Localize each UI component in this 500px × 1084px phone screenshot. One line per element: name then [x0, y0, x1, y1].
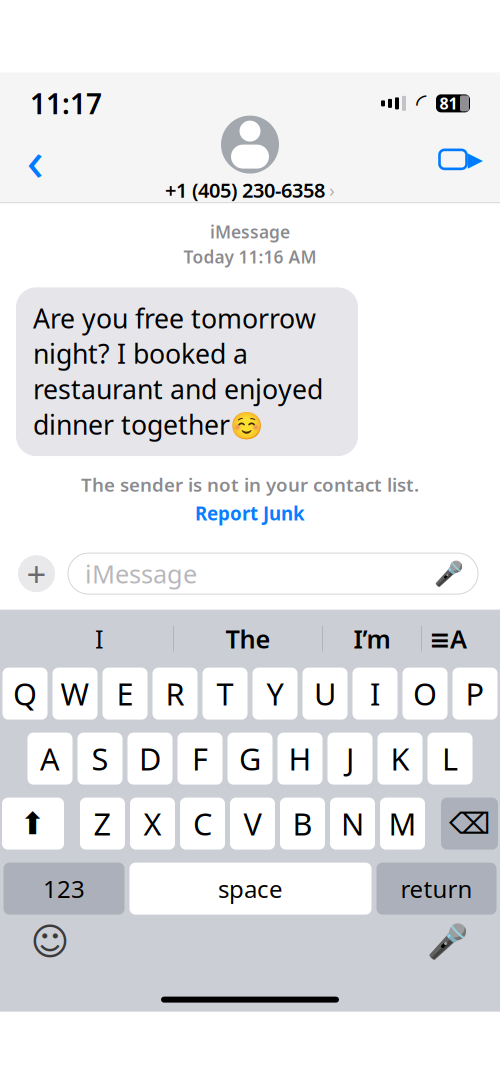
- button[interactable]: I: [352, 668, 397, 720]
- staticText: A: [40, 738, 60, 779]
- button[interactable]: iMessage: [68, 553, 478, 594]
- button[interactable]: Delete: [441, 798, 498, 850]
- staticText: Q: [13, 673, 37, 714]
- button[interactable]: M: [380, 798, 425, 850]
- staticText: ›: [329, 177, 335, 202]
- button[interactable]: Z: [80, 798, 125, 850]
- button[interactable]: W: [52, 668, 97, 720]
- button[interactable]: A: [27, 733, 72, 785]
- button[interactable]: E: [102, 668, 147, 720]
- button[interactable]: T: [202, 668, 247, 720]
- staticText: L: [442, 738, 458, 779]
- button[interactable]: P: [452, 668, 497, 720]
- staticText: 🎤: [427, 923, 469, 961]
- staticText: B: [292, 803, 312, 844]
- staticText: Today 11:16 AM: [183, 245, 316, 268]
- staticText: ☺: [30, 920, 69, 963]
- button[interactable]: B: [280, 798, 325, 850]
- staticText: P: [465, 673, 484, 714]
- button[interactable]: Emoji: [26, 921, 74, 963]
- staticText: G: [239, 738, 261, 779]
- staticText: F: [192, 738, 208, 779]
- button[interactable]: L: [427, 733, 472, 785]
- staticText: 🎤: [434, 560, 464, 587]
- button[interactable]: J: [327, 733, 372, 785]
- button[interactable]: Dictation: [424, 921, 472, 963]
- staticText: Are you free tomorrow night? I booked a …: [33, 300, 323, 442]
- button[interactable]: H: [277, 733, 322, 785]
- staticText: W: [60, 673, 89, 714]
- staticText: C: [193, 803, 212, 844]
- button[interactable]: return: [376, 863, 496, 915]
- button[interactable]: O: [402, 668, 447, 720]
- button[interactable]: V: [230, 798, 275, 850]
- staticText: space: [218, 873, 283, 905]
- staticText: I: [370, 673, 380, 714]
- button[interactable]: I’m: [323, 616, 421, 662]
- staticText: J: [346, 738, 354, 779]
- staticText: 11:17: [30, 85, 102, 122]
- staticText: M: [388, 803, 416, 844]
- button[interactable]: R: [152, 668, 197, 720]
- staticText: X: [143, 803, 161, 844]
- button[interactable]: G: [227, 733, 272, 785]
- button[interactable]: F: [177, 733, 222, 785]
- staticText: ≡A: [429, 622, 467, 655]
- staticText: V: [243, 803, 261, 844]
- staticText: 123: [43, 873, 85, 905]
- staticText: D: [139, 738, 161, 779]
- staticText: S: [91, 738, 108, 779]
- staticText: The: [225, 622, 270, 655]
- staticText: T: [216, 673, 233, 714]
- staticText: E: [116, 673, 133, 714]
- staticText: +: [26, 551, 46, 597]
- staticText: ◜: [416, 88, 426, 118]
- button[interactable]: Add attachment: [18, 555, 55, 592]
- staticText: ⬆: [20, 806, 46, 841]
- staticText: Z: [93, 803, 111, 844]
- button[interactable]: Back: [8, 129, 62, 189]
- staticText: The sender is not in your contact list.: [81, 472, 419, 497]
- button[interactable]: Y: [252, 668, 297, 720]
- staticText: H: [288, 738, 311, 779]
- button[interactable]: U: [302, 668, 347, 720]
- staticText: 81: [439, 93, 457, 114]
- button[interactable]: Text formatting: [422, 616, 474, 662]
- staticText: N: [341, 803, 364, 844]
- button[interactable]: D: [127, 733, 172, 785]
- button[interactable]: The: [174, 616, 322, 662]
- staticText: +1 (405) 230-6358: [165, 177, 325, 203]
- staticText: U: [314, 673, 336, 714]
- button[interactable]: C: [180, 798, 225, 850]
- button[interactable]: Report Junk: [185, 497, 315, 530]
- staticText: R: [165, 673, 184, 714]
- staticText: ▶: [467, 148, 482, 171]
- button[interactable]: K: [377, 733, 422, 785]
- button[interactable]: S: [77, 733, 122, 785]
- button[interactable]: N: [330, 798, 375, 850]
- staticText: iMessage: [210, 220, 290, 243]
- staticText: Report Junk: [195, 501, 305, 526]
- button[interactable]: Q: [2, 668, 47, 720]
- staticText: I’m: [353, 622, 390, 655]
- button[interactable]: I: [26, 616, 173, 662]
- button[interactable]: X: [130, 798, 175, 850]
- staticText: I: [95, 622, 104, 655]
- button[interactable]: space: [129, 863, 371, 915]
- staticText: O: [413, 673, 437, 714]
- button[interactable]: Shift: [2, 798, 64, 850]
- staticText: Y: [266, 673, 283, 714]
- button[interactable]: 123: [3, 863, 124, 915]
- button[interactable]: FaceTime: [434, 129, 488, 189]
- staticText: K: [390, 738, 409, 779]
- staticText: return: [400, 873, 472, 905]
- staticText: iMessage: [85, 557, 197, 590]
- staticText: ‹: [26, 122, 43, 197]
- staticText: ⌫: [449, 807, 490, 840]
